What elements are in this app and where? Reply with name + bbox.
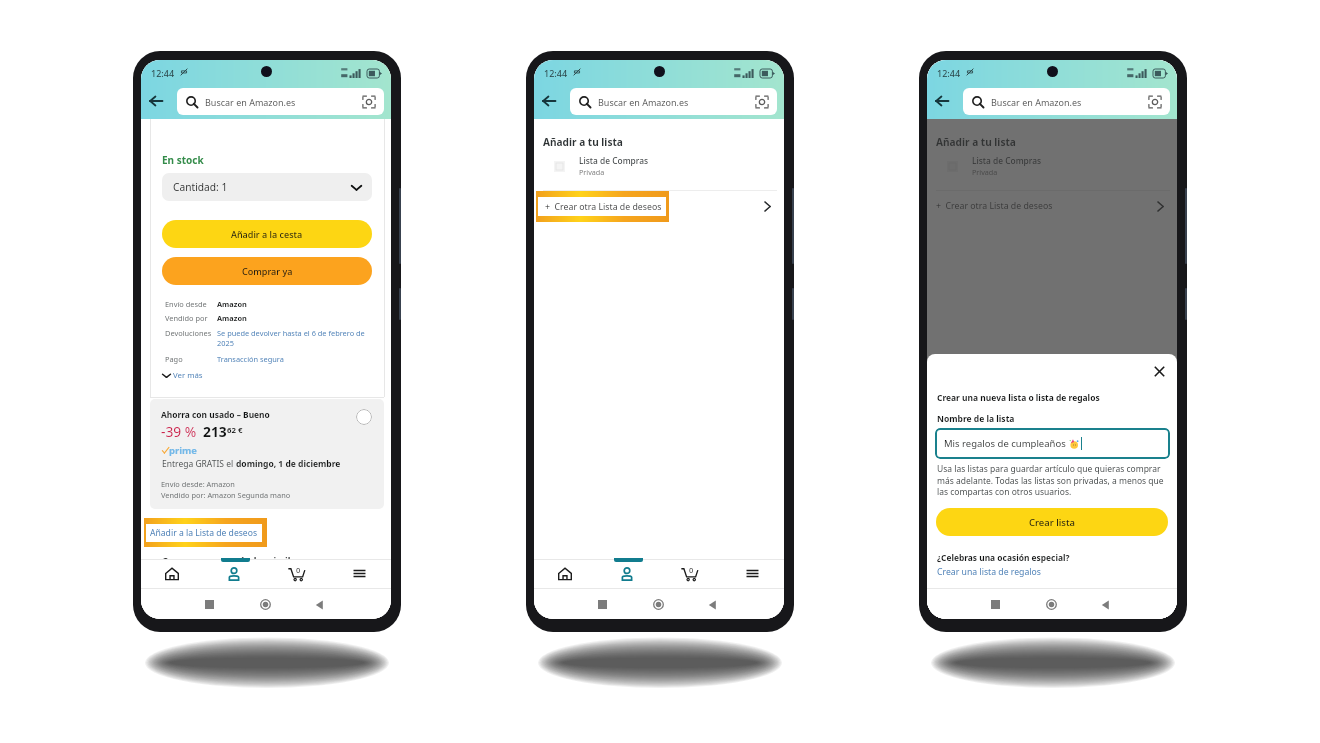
- staticText: + Crear otra Lista de deseos: [936, 200, 1053, 212]
- staticText: Ahorra con usado – Bueno: [161, 409, 270, 420]
- button[interactable]: + Crear otra Lista de deseos: [927, 191, 1177, 221]
- button[interactable]: Tu cuenta: [989, 559, 1051, 588]
- button[interactable]: Atrás: [537, 89, 560, 112]
- button[interactable]: Mis regalos de cumpleaños: [935, 428, 1170, 459]
- staticText: Crear una nueva lista o lista de regalos: [937, 392, 1100, 404]
- staticText: Mis regalos de cumpleaños: [944, 437, 1069, 450]
- staticText: Devoluciones: [165, 328, 217, 338]
- staticText: 12:44: [544, 67, 568, 79]
- staticText: + Crear otra Lista de deseos: [543, 200, 660, 212]
- button[interactable]: Lista de Compras: [534, 153, 784, 179]
- staticText: Lista de Compras: [972, 155, 1042, 166]
- staticText: Transacción segura: [217, 354, 284, 364]
- staticText: -39 %: [161, 422, 197, 441]
- button[interactable]: Buscar en Amazon.es: [177, 88, 384, 115]
- button[interactable]: Atrás: [930, 89, 953, 112]
- staticText: Comprar ya: [242, 265, 293, 277]
- staticText: Buscar en Amazon.es: [991, 96, 1082, 108]
- staticText: Cantidad: 1: [173, 180, 228, 194]
- staticText: 12:44: [937, 67, 961, 79]
- staticText: 0: [296, 565, 301, 575]
- staticText: Buscar en Amazon.es: [205, 96, 296, 108]
- button[interactable]: Añadir a la cesta: [162, 220, 372, 248]
- button[interactable]: Cesta: [1051, 559, 1114, 588]
- button[interactable]: Comprar ya: [162, 257, 372, 285]
- staticText: Entrega GRATIS el: [162, 458, 236, 470]
- staticText: domingo, 1 de diciembre: [236, 458, 341, 470]
- staticText: Envío desde: Amazon: [161, 479, 235, 489]
- staticText: Crear lista: [1029, 516, 1076, 529]
- button[interactable]: Menú: [721, 559, 784, 588]
- staticText: 62: [227, 425, 236, 436]
- button[interactable]: Cesta: [658, 559, 721, 588]
- staticText: €: [236, 425, 243, 436]
- staticText: Vendido por: Amazon Segunda mano: [161, 490, 291, 500]
- staticText: Añadir a tu lista: [936, 135, 1016, 149]
- staticText: prime: [169, 444, 198, 457]
- button[interactable]: Añadir a la Lista de deseos: [150, 527, 258, 539]
- staticText: Buscar en Amazon.es: [598, 96, 689, 108]
- button[interactable]: Buscar en Amazon.es: [570, 88, 777, 115]
- staticText: 0: [689, 565, 694, 575]
- staticText: 12:44: [151, 67, 175, 79]
- staticText: Envío desde: [165, 299, 217, 309]
- staticText: Se puede devolver hasta el 6 de febrero …: [217, 328, 368, 348]
- staticText: En stock: [162, 153, 204, 167]
- staticText: Amazon: [217, 299, 247, 309]
- button[interactable]: Ahorra con usado – Bueno: [150, 399, 384, 509]
- staticText: Usa las listas para guardar artículo que…: [937, 463, 1165, 497]
- button[interactable]: Cerrar: [1151, 363, 1168, 380]
- button[interactable]: + Crear otra Lista de deseos: [534, 191, 784, 221]
- button[interactable]: Lista de Compras: [927, 153, 1177, 179]
- button[interactable]: Crear lista: [936, 508, 1168, 536]
- button[interactable]: Crear una lista de regalos: [937, 566, 1041, 578]
- staticText: Nombre de la lista: [937, 413, 1015, 425]
- button[interactable]: Cantidad: 1: [162, 173, 372, 201]
- staticText: Vendido por: [165, 313, 217, 323]
- staticText: Comparar con artículos similares: [162, 554, 310, 566]
- button[interactable]: Ver más: [162, 370, 203, 381]
- button[interactable]: Buscar en Amazon.es: [963, 88, 1170, 115]
- button[interactable]: Cesta: [265, 559, 328, 588]
- staticText: Añadir a la cesta: [231, 228, 303, 240]
- staticText: Amazon: [217, 313, 247, 323]
- staticText: ¿Celebras una ocasión especial?: [937, 552, 1070, 563]
- staticText: Pago: [165, 354, 217, 364]
- button[interactable]: Inicio: [141, 559, 203, 588]
- button[interactable]: + Crear otra Lista de deseos: [545, 201, 662, 213]
- button[interactable]: Inicio: [927, 559, 989, 588]
- staticText: Lista de Compras: [579, 155, 649, 166]
- staticText: Privada: [972, 167, 998, 177]
- button[interactable]: Menú: [328, 559, 391, 588]
- button[interactable]: Tu cuenta: [596, 559, 658, 588]
- button[interactable]: Seleccionar oferta usada: [356, 409, 372, 425]
- staticText: Privada: [579, 167, 605, 177]
- staticText: Añadir a tu lista: [543, 135, 623, 149]
- button[interactable]: Inicio: [534, 559, 596, 588]
- button[interactable]: Tu cuenta: [203, 559, 265, 588]
- staticText: 213: [203, 422, 227, 441]
- button[interactable]: Atrás: [144, 89, 167, 112]
- staticText: Ver más: [171, 370, 203, 381]
